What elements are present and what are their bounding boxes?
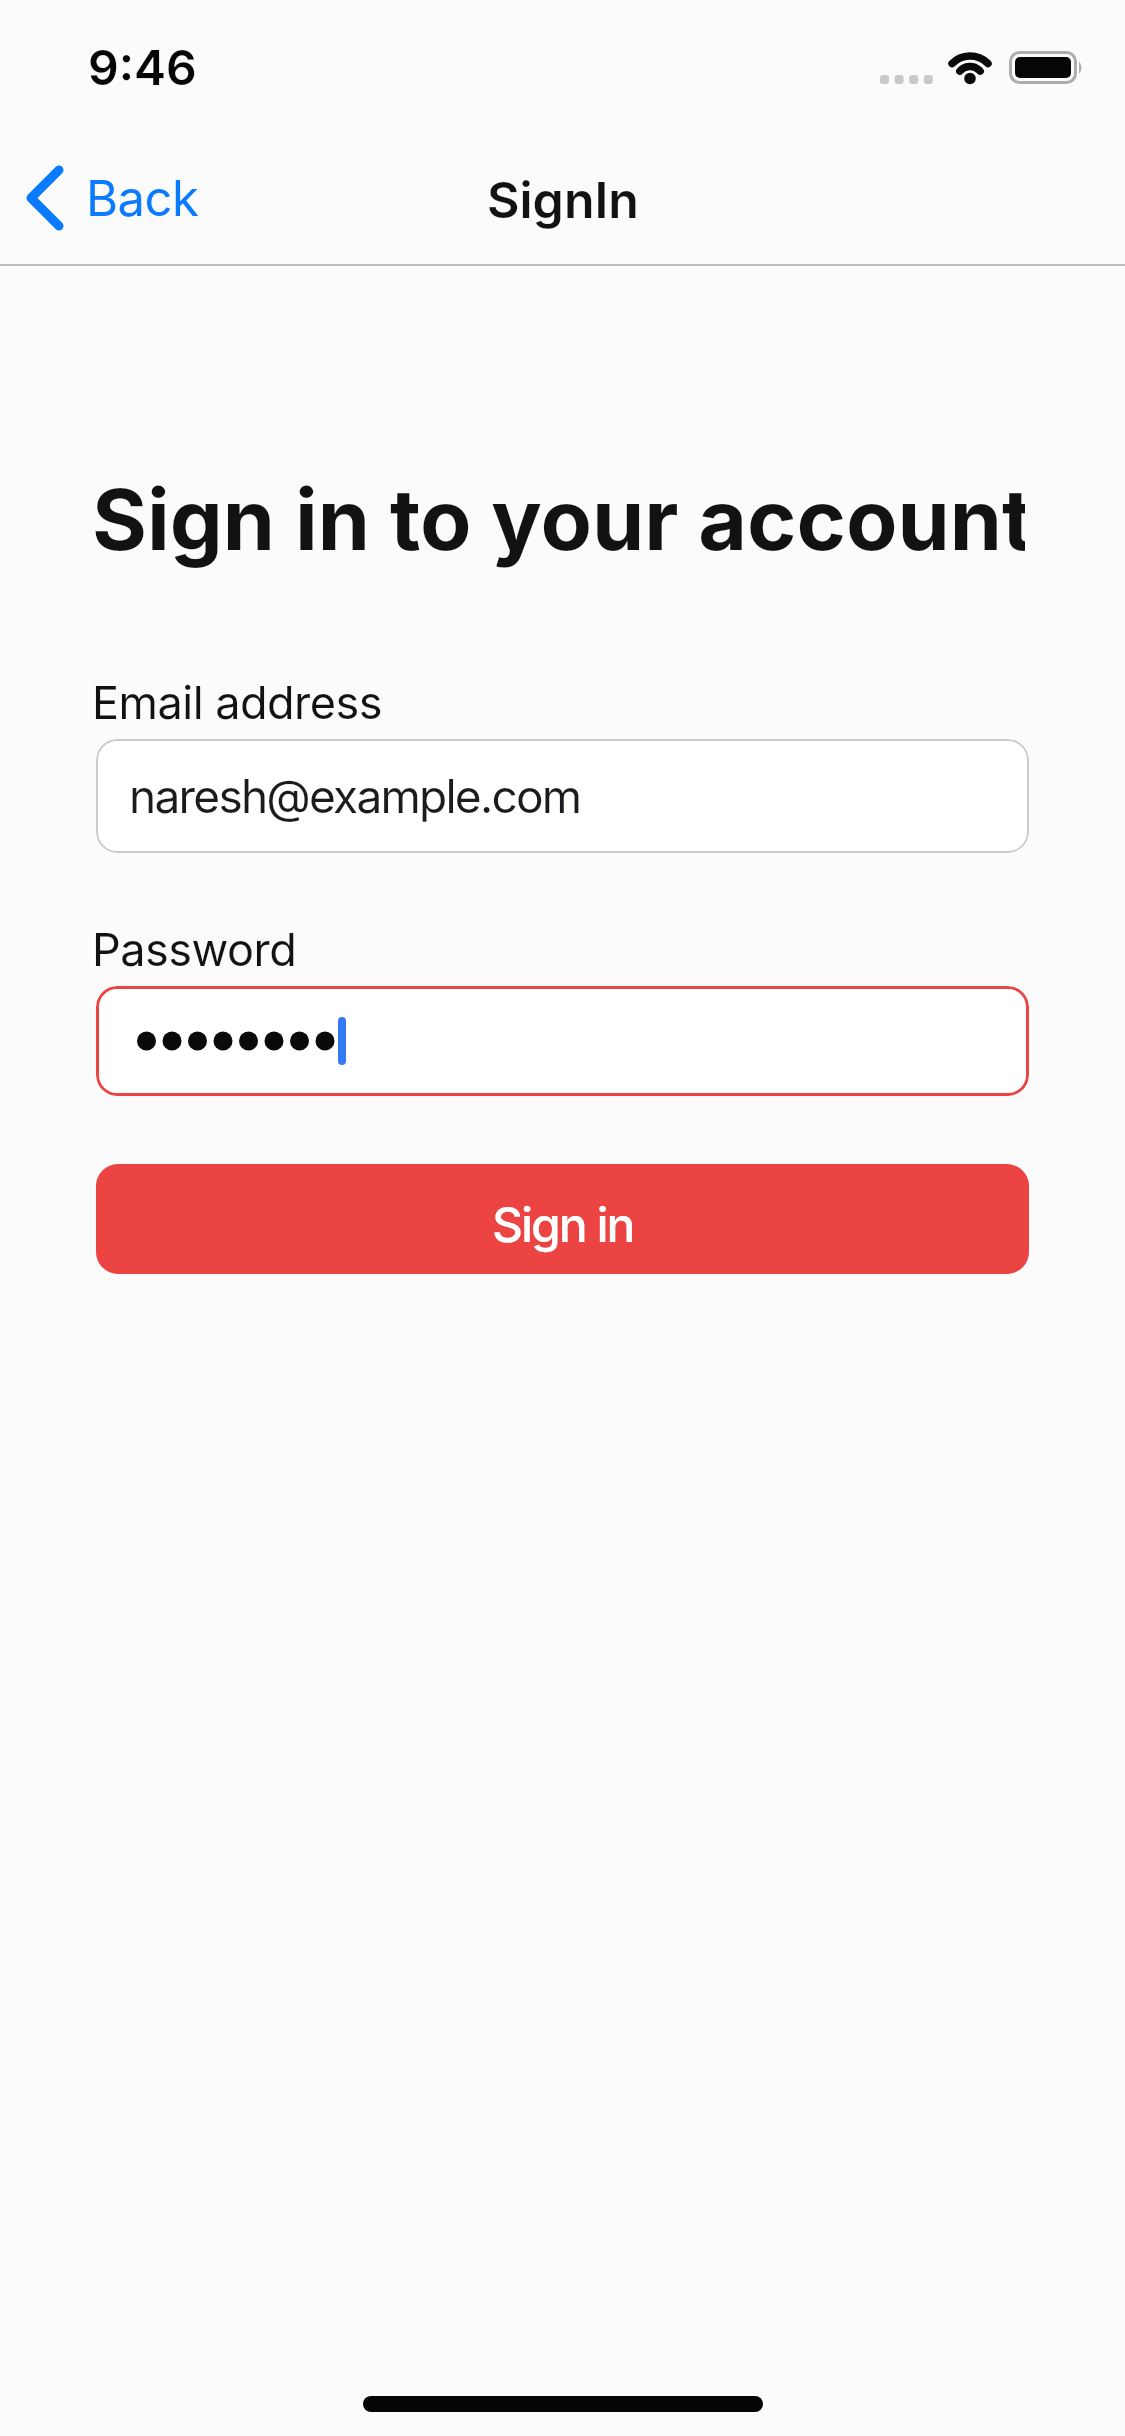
button[interactable]: Back (0, 168, 199, 228)
staticText: Password (92, 922, 297, 976)
button[interactable] (96, 986, 1029, 1096)
staticText: Back (86, 169, 199, 228)
staticText: naresh@example.com (129, 768, 581, 824)
staticText: Sign in (492, 1195, 634, 1253)
button[interactable]: Sign in (96, 1164, 1029, 1274)
staticText: 9:46 (88, 38, 197, 96)
staticText: Email address (92, 675, 382, 729)
staticText: Sign in to your account (92, 469, 1025, 571)
staticText: SignIn (487, 170, 639, 230)
button[interactable]: naresh@example.com (96, 739, 1029, 853)
